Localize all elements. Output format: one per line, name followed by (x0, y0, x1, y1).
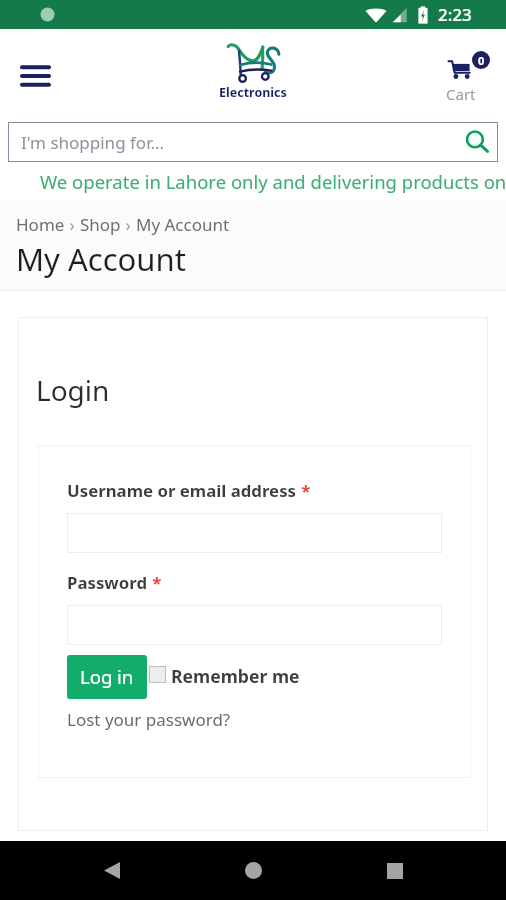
staticText: * (297, 479, 311, 502)
button[interactable]: Lost your password? (67, 708, 231, 731)
staticText: › (121, 213, 136, 236)
button[interactable]: Home (16, 213, 65, 236)
staticText: My Account (136, 213, 230, 236)
staticText: Electronics (219, 84, 287, 101)
button[interactable]: Cart, 0 items (448, 51, 490, 104)
staticText: › (65, 213, 80, 236)
staticText: Cart (446, 84, 476, 104)
staticText: We operate in Lahore only and delivering… (40, 169, 506, 194)
button[interactable]: Home (223, 841, 283, 900)
staticText: 2:23 (438, 3, 472, 26)
staticText: Username or email address (67, 479, 297, 502)
button[interactable]: Recent apps (365, 841, 425, 900)
staticText: Password (67, 571, 148, 594)
button[interactable]: Log in (67, 655, 147, 699)
button[interactable]: Password field (67, 605, 442, 645)
button[interactable]: Remember me (149, 666, 166, 683)
staticText: My Account (16, 238, 186, 280)
button[interactable]: Open navigation menu (9, 49, 62, 102)
staticText: * (148, 571, 162, 594)
staticText: Login (36, 371, 110, 409)
button[interactable]: Search products (8, 122, 498, 162)
button[interactable]: Search (462, 127, 492, 157)
button[interactable]: Shop (80, 213, 121, 236)
staticText: 0 (478, 53, 485, 68)
staticText: I'm shopping for... (21, 131, 165, 154)
staticText: Log in (80, 664, 134, 689)
button[interactable]: Back (82, 841, 142, 900)
button[interactable]: Username or email address field (67, 513, 442, 553)
button[interactable]: Remember me (171, 664, 300, 688)
button[interactable]: Electronics (219, 42, 287, 101)
